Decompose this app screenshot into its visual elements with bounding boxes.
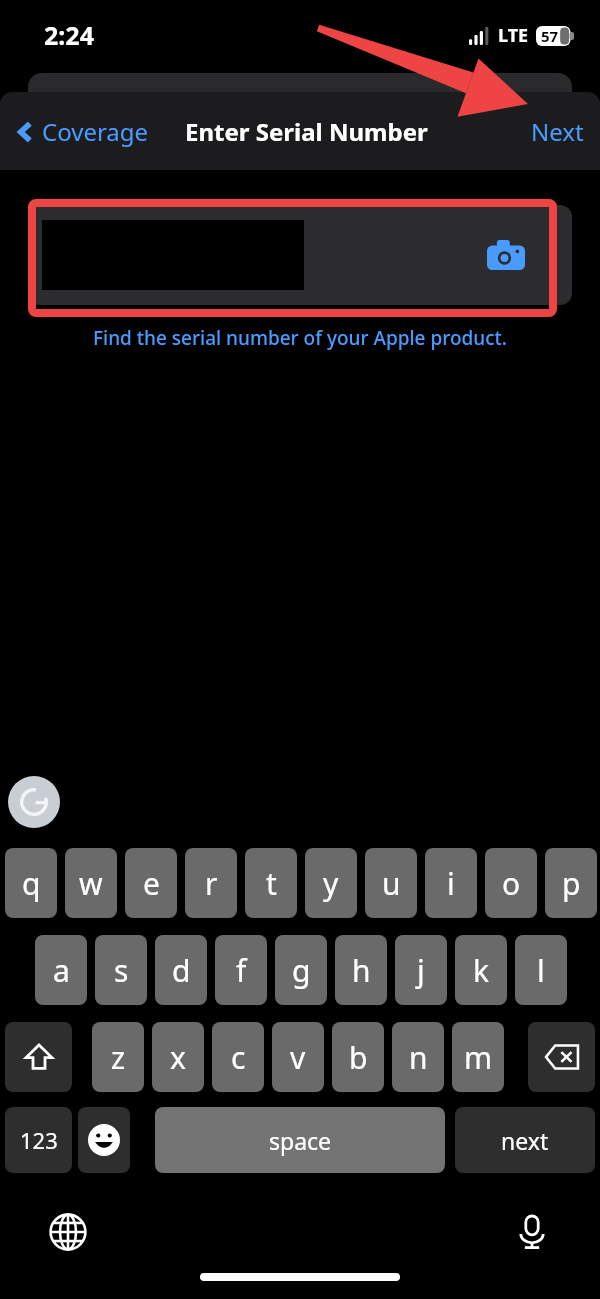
staticText: y [323,863,339,904]
button[interactable]: g [275,935,327,1005]
staticText: n [409,1037,428,1078]
staticText: o [502,863,521,904]
button[interactable]: Coverage [8,107,155,156]
button[interactable]: d [155,935,207,1005]
staticText: e [143,863,160,904]
staticText: s [114,950,129,991]
staticText: next [501,1125,549,1156]
staticText: LTE [498,23,529,48]
button[interactable]: z [92,1022,144,1092]
button[interactable]: e [125,848,177,918]
staticText: g [292,950,311,991]
staticText: m [464,1037,493,1078]
staticText: Coverage [42,115,149,148]
button[interactable]: Scan serial number with camera [482,231,530,279]
button[interactable]: u [365,848,417,918]
button[interactable]: l [515,935,567,1005]
button[interactable]: i [425,848,477,918]
button[interactable]: b [332,1022,384,1092]
button[interactable]: 123 [5,1107,72,1173]
staticText: Enter Serial Number [185,115,428,148]
staticText: d [172,950,191,991]
button[interactable]: m [452,1022,504,1092]
button[interactable]: Dictate [508,1208,556,1256]
button[interactable]: p [545,848,597,918]
staticText: r [205,863,218,904]
button[interactable]: r [185,848,237,918]
button[interactable]: Shift [5,1022,72,1092]
staticText: 123 [20,1125,58,1155]
button[interactable]: q [5,848,57,918]
staticText: f [236,950,247,991]
staticText: z [111,1037,126,1078]
button[interactable]: o [485,848,537,918]
staticText: Find the serial number of your Apple pro… [93,325,507,351]
button[interactable]: k [455,935,507,1005]
button[interactable]: y [305,848,357,918]
button[interactable]: Emoji [78,1107,130,1173]
button[interactable]: v [272,1022,324,1092]
staticText: l [537,950,545,991]
button[interactable]: Next [525,107,590,156]
staticText: b [349,1037,368,1078]
button[interactable]: Find the serial number of your Apple pro… [0,325,600,351]
staticText: u [382,863,401,904]
button[interactable]: w [65,848,117,918]
staticText: w [79,863,103,904]
staticText: p [562,863,581,904]
staticText: q [22,863,41,904]
button[interactable]: next [455,1107,595,1173]
staticText: v [290,1037,306,1078]
button[interactable]: Switch keyboard language [44,1208,92,1256]
staticText: a [53,950,70,991]
staticText: k [473,950,490,991]
button[interactable]: j [395,935,447,1005]
button[interactable]: a [35,935,87,1005]
button[interactable]: n [392,1022,444,1092]
button[interactable]: Scan serial number with camera [28,205,572,305]
staticText: Next [531,115,584,148]
button[interactable]: Grammarly keyboard assistant [8,776,60,828]
button[interactable]: c [212,1022,264,1092]
button[interactable]: Backspace [528,1022,595,1092]
staticText: i [447,863,455,904]
staticText: space [269,1125,332,1156]
staticText: c [231,1037,246,1078]
staticText: h [352,950,371,991]
staticText: 2:24 [44,18,94,52]
staticText: j [417,950,425,991]
staticText: t [266,863,277,904]
button[interactable]: h [335,935,387,1005]
button[interactable]: x [152,1022,204,1092]
button[interactable]: space [155,1107,445,1173]
button[interactable]: f [215,935,267,1005]
staticText: x [170,1037,186,1078]
button[interactable]: s [95,935,147,1005]
staticText: 57 [541,26,559,46]
button[interactable]: t [245,848,297,918]
